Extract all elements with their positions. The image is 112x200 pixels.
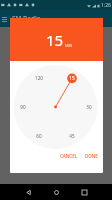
staticText: 15 <box>46 30 64 50</box>
staticText: DONE <box>85 153 98 159</box>
button[interactable]: Open navigation menu <box>0 14 9 24</box>
staticText: CANCEL <box>60 153 78 159</box>
staticText: FM Radio <box>12 14 41 23</box>
button[interactable]: Home <box>48 184 64 200</box>
staticText: 90 <box>20 104 26 110</box>
staticText: MIN <box>65 43 73 48</box>
button[interactable]: CANCEL <box>58 151 80 161</box>
staticText: 45 <box>69 133 75 139</box>
staticText: 30 <box>86 104 92 110</box>
staticText: 120 <box>35 75 43 81</box>
staticText: 60 <box>36 133 42 139</box>
button[interactable]: Recent apps <box>76 184 92 200</box>
staticText: 1:26 <box>101 2 111 9</box>
button[interactable]: Back <box>20 184 36 200</box>
staticText: 15 <box>69 75 75 81</box>
button[interactable]: DONE <box>83 151 100 161</box>
